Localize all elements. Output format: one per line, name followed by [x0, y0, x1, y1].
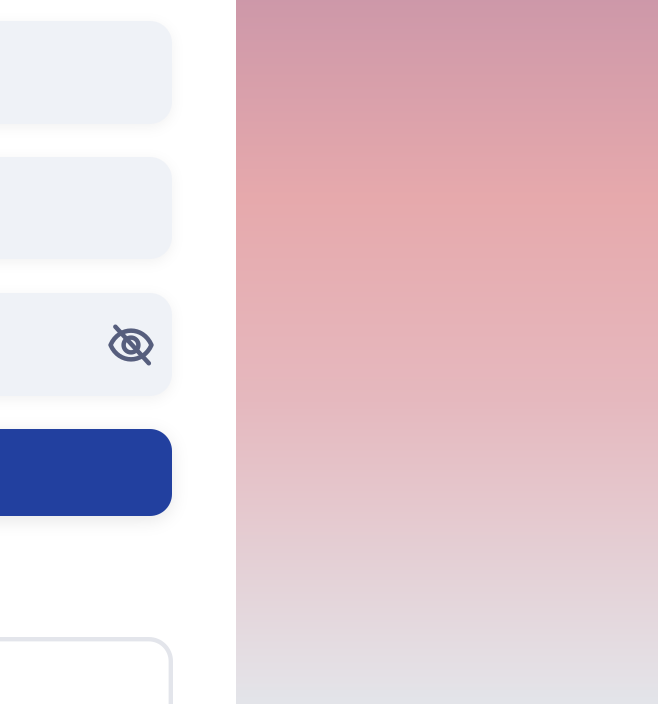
button[interactable]: Create account: [0, 637, 173, 704]
button[interactable]: Password, hide password: [0, 293, 172, 396]
button[interactable]: Sign in: [0, 429, 172, 516]
